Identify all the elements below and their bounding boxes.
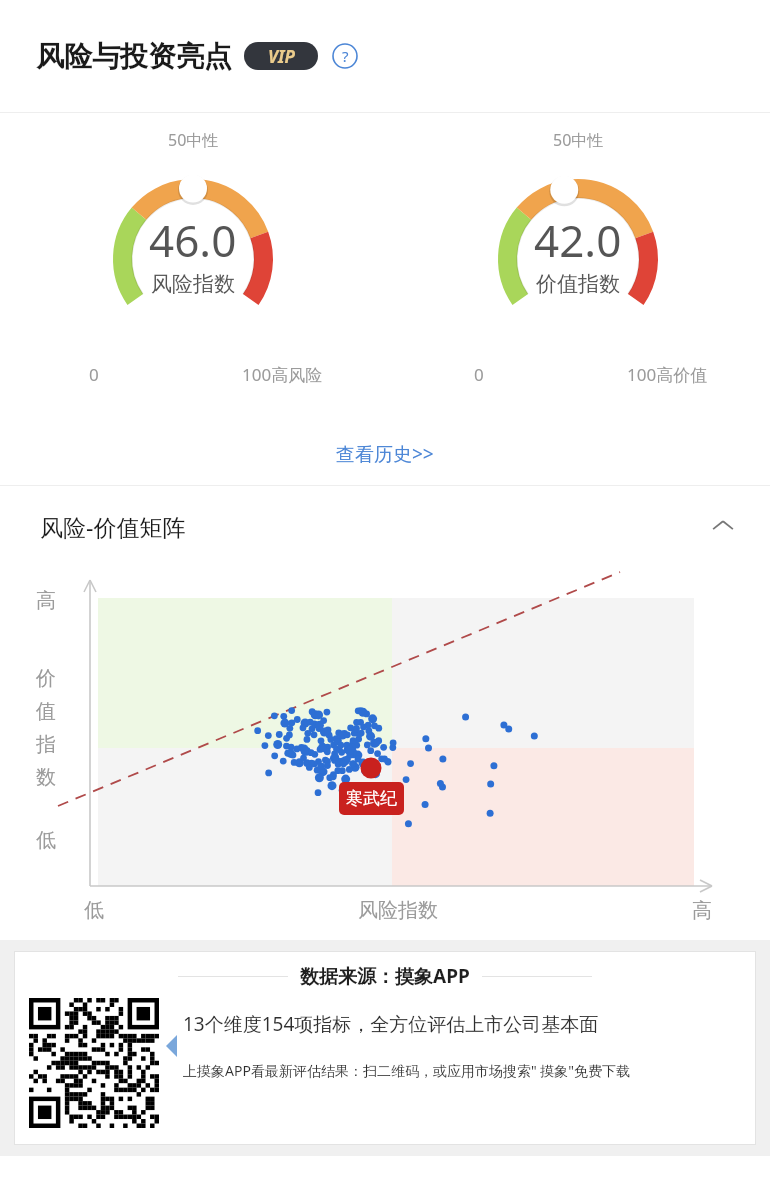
button[interactable]: 帮助 [332, 43, 358, 69]
staticText: ? [342, 46, 349, 66]
staticText: 值 [36, 699, 56, 724]
staticText: 风险指数 [358, 898, 438, 923]
button[interactable]: 查看历史>> [328, 433, 442, 475]
staticText: 100高风险 [242, 363, 323, 386]
staticText: 指 [36, 732, 56, 757]
staticText: 价值指数 [536, 271, 620, 297]
staticText: 寒武纪 [346, 788, 397, 809]
staticText: 风险与投资亮点 [36, 39, 232, 74]
staticText: 低 [84, 898, 104, 923]
staticText: 风险指数 [151, 271, 235, 297]
button[interactable]: VIP [244, 42, 318, 70]
staticText: 高 [692, 898, 712, 923]
staticText: VIP [268, 45, 295, 68]
staticText: 风险-价值矩阵 [40, 511, 186, 542]
staticText: 查看历史>> [336, 441, 434, 467]
staticText: 13个维度154项指标，全方位评估上市公司基本面 [183, 1011, 599, 1037]
button[interactable]: 二维码 [26, 995, 162, 1131]
button[interactable]: 风险-价值矩阵 [0, 486, 770, 566]
staticText: 0 [474, 363, 484, 386]
staticText: 0 [89, 363, 99, 386]
staticText: 100高价值 [627, 363, 708, 386]
staticText: 46.0 [149, 210, 237, 270]
staticText: 低 [36, 828, 56, 853]
staticText: 数据来源：摸象APP [300, 963, 470, 989]
staticText: 上摸象APP看最新评估结果：扫二维码，或应用市场搜索" 摸象"免费下载 [183, 1061, 630, 1080]
staticText: 数 [36, 765, 56, 790]
staticText: 50中性 [168, 129, 219, 151]
staticText: 高 [36, 588, 56, 613]
staticText: 50中性 [553, 129, 604, 151]
staticText: 42.0 [534, 210, 622, 270]
other: 收起 [710, 513, 736, 539]
staticText: 价 [36, 666, 56, 691]
